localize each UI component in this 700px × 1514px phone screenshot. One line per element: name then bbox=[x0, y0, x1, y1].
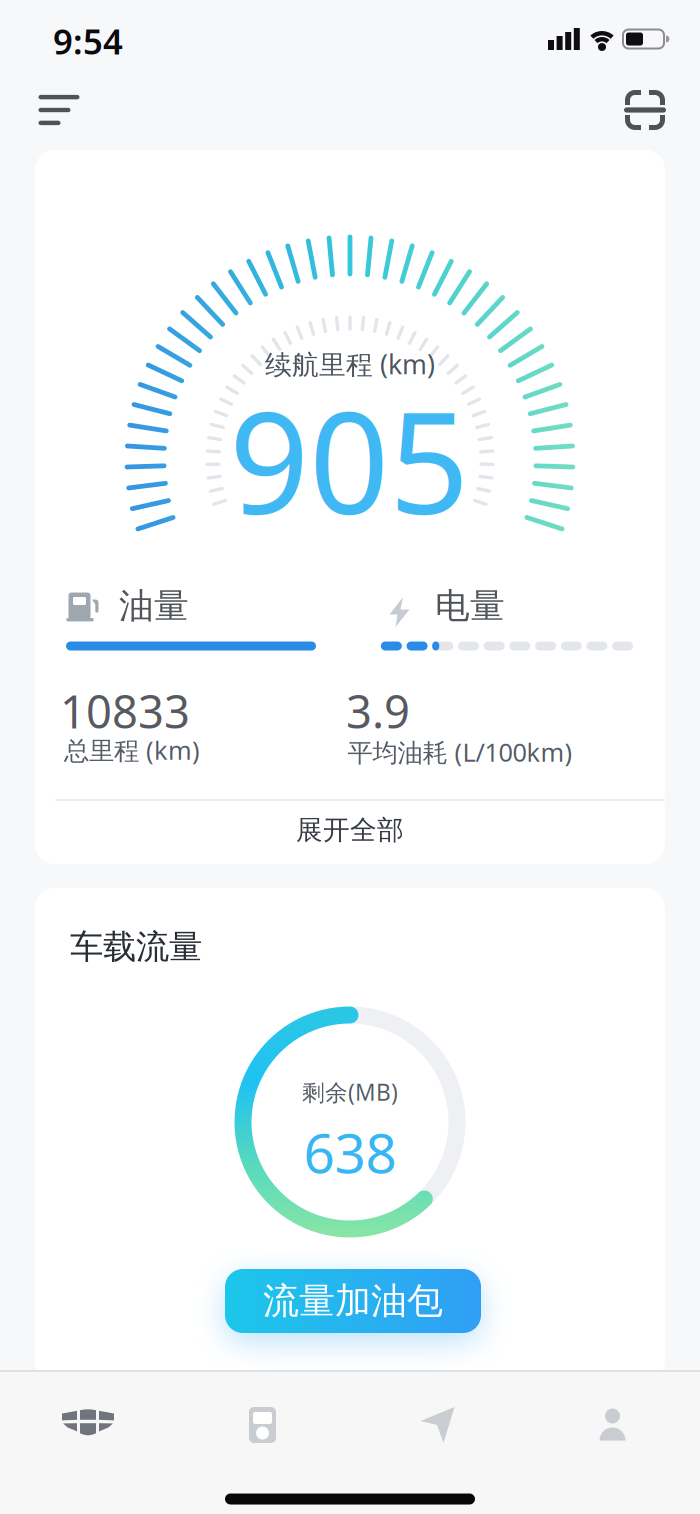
button[interactable]: Navigation bbox=[377, 1385, 497, 1465]
staticText: 车载流量 bbox=[70, 926, 202, 967]
staticText: 流量加油包 bbox=[263, 1279, 443, 1323]
staticText: 电量 bbox=[435, 585, 505, 627]
staticText: 905 bbox=[229, 367, 469, 553]
staticText: 油量 bbox=[119, 585, 189, 627]
button[interactable]: Profile bbox=[552, 1385, 672, 1465]
staticText: 续航里程 (km) bbox=[265, 346, 435, 382]
staticText: 展开全部 bbox=[296, 814, 404, 846]
button[interactable]: Scan bbox=[617, 83, 673, 137]
staticText: 10833 bbox=[60, 681, 190, 741]
button[interactable]: 展开全部 bbox=[35, 799, 665, 861]
staticText: 3.9 bbox=[346, 681, 410, 741]
button[interactable]: 流量加油包 bbox=[225, 1269, 481, 1333]
button[interactable]: Vehicle controls bbox=[202, 1385, 322, 1465]
staticText: 剩余(MB) bbox=[302, 1077, 398, 1107]
button[interactable]: Home bbox=[28, 1383, 148, 1463]
button[interactable]: Menu bbox=[29, 83, 89, 137]
staticText: 638 bbox=[303, 1116, 396, 1188]
staticText: 9:54 bbox=[53, 18, 123, 64]
staticText: 平均油耗 (L/100km) bbox=[347, 735, 572, 769]
staticText: 总里程 (km) bbox=[64, 733, 200, 767]
